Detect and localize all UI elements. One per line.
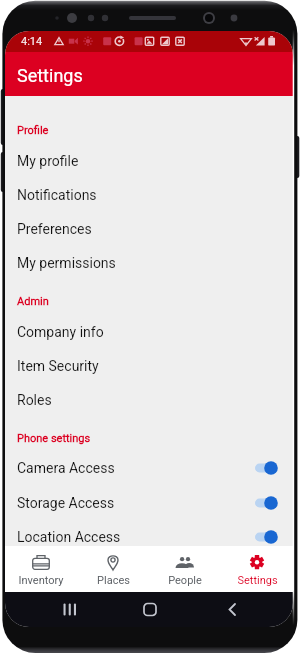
staticText: Profile [17,124,49,137]
button[interactable]: Places [77,546,149,592]
button[interactable]: Storage Access [5,486,293,520]
button[interactable]: People [149,546,221,592]
staticText: Inventory [18,574,64,587]
staticText: Location Access [17,529,267,545]
staticText: Camera Access [17,460,267,476]
button[interactable]: My profile [5,144,293,178]
staticText: Settings [17,65,83,86]
staticText: Storage Access [17,495,267,511]
staticText: Company info [17,324,104,340]
button[interactable]: Inventory [5,546,77,592]
button[interactable]: Camera Access [5,451,293,485]
button[interactable]: Item Security [5,349,293,383]
button[interactable]: Company info [5,315,293,349]
staticText: Item Security [17,358,99,374]
staticText: People [168,574,202,587]
button[interactable]: Roles [5,383,293,417]
staticText: Admin [17,295,49,308]
staticText: My profile [17,153,79,169]
button[interactable]: Settings [221,546,293,592]
staticText: Places [97,574,130,587]
staticText: Notifications [17,187,97,203]
staticText: My permissions [17,255,116,271]
button[interactable]: Notifications [5,178,293,212]
staticText: Roles [17,392,52,408]
staticText: 4:14 [21,35,43,48]
button[interactable]: Preferences [5,212,293,246]
staticText: Preferences [17,221,92,237]
button[interactable]: My permissions [5,246,293,280]
staticText: Phone settings [17,432,91,445]
button[interactable]: Location Access [5,520,293,554]
staticText: Settings [237,574,278,587]
